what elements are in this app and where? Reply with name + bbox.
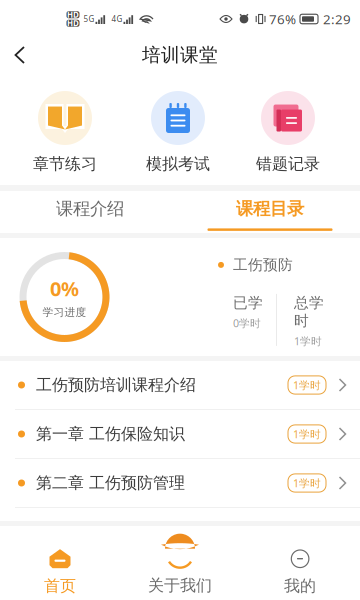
button[interactable]: 课程目录 — [180, 191, 360, 233]
staticText: 总学时 — [294, 294, 324, 330]
staticText: 我的 — [284, 576, 316, 596]
staticText: HD — [67, 9, 79, 20]
button[interactable]: Back — [0, 38, 40, 72]
staticText: 1学时 — [293, 378, 321, 392]
staticText: 第一章 工伤保险知识 — [36, 424, 185, 444]
staticText: 工伤预防 — [233, 256, 293, 274]
staticText: 2:29 — [323, 10, 351, 28]
staticText: 课程目录 — [236, 198, 304, 219]
staticText: 1学时 — [294, 334, 322, 348]
button[interactable]: 我的 — [240, 526, 360, 600]
staticText: 首页 — [44, 576, 76, 596]
button[interactable]: 模拟考试 — [123, 72, 233, 185]
button[interactable]: 第二章 工伤预防管理 — [0, 459, 360, 507]
button[interactable]: 章节练习 — [10, 72, 120, 185]
button[interactable]: 首页 — [0, 526, 120, 600]
staticText: 0学时 — [233, 316, 261, 330]
staticText: 5G — [83, 14, 94, 24]
button[interactable]: 课程介绍 — [0, 191, 180, 233]
staticText: 章节练习 — [33, 154, 97, 174]
staticText: 已学 — [233, 294, 263, 312]
staticText: HD — [67, 18, 79, 28]
staticText: 课程介绍 — [56, 198, 124, 219]
staticText: 1学时 — [293, 476, 321, 490]
button[interactable]: 工伤预防培训课程介绍 — [0, 361, 360, 409]
staticText: 工伤预防培训课程介绍 — [36, 375, 196, 395]
staticText: 第二章 工伤预防管理 — [36, 473, 185, 493]
staticText: 0% — [50, 275, 79, 302]
staticText: 4G — [111, 14, 122, 24]
staticText: 76% — [269, 10, 296, 28]
button[interactable]: 关于我们 — [120, 526, 240, 600]
staticText: 学习进度 — [42, 306, 86, 319]
staticText: 错题记录 — [256, 154, 320, 174]
button[interactable]: 第一章 工伤保险知识 — [0, 410, 360, 458]
staticText: 关于我们 — [148, 576, 212, 595]
staticText: 培训课堂 — [142, 43, 218, 66]
staticText: 1学时 — [293, 427, 321, 441]
button[interactable]: 错题记录 — [233, 72, 343, 185]
staticText: 模拟考试 — [146, 154, 210, 174]
